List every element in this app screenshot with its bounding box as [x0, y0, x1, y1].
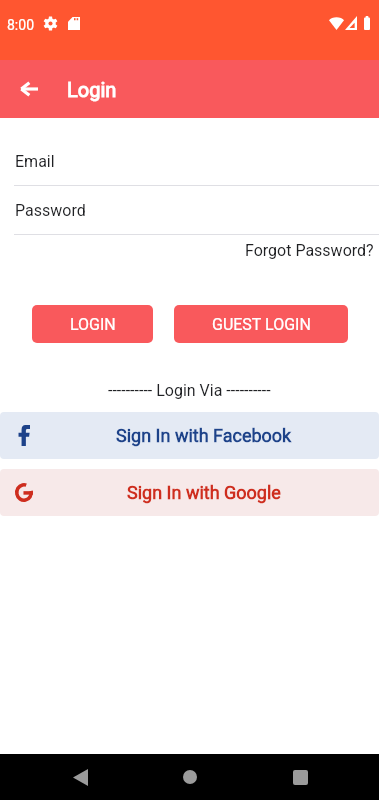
staticText: Password — [15, 201, 86, 220]
button[interactable]: Recent apps — [250, 754, 350, 800]
staticText: 8:00 — [7, 17, 34, 33]
staticText: Sign In with Facebook — [116, 425, 292, 446]
button[interactable]: Sign In with Google — [0, 469, 379, 516]
staticText: Login — [67, 78, 117, 101]
staticText: GUEST LOGIN — [212, 315, 311, 334]
button[interactable]: Forgot Password? — [245, 241, 374, 260]
staticText: LOGIN — [70, 315, 116, 334]
staticText: Email — [15, 152, 55, 171]
button[interactable]: Sign In with Facebook — [0, 412, 379, 459]
button[interactable]: LOGIN — [32, 305, 153, 343]
button[interactable]: Back — [0, 60, 58, 118]
button[interactable]: Home — [130, 754, 250, 800]
button[interactable]: Back — [30, 754, 130, 800]
staticText: Sign In with Google — [127, 482, 281, 503]
staticText: ---------- Login Via ---------- — [108, 381, 271, 400]
button[interactable]: GUEST LOGIN — [174, 305, 348, 343]
